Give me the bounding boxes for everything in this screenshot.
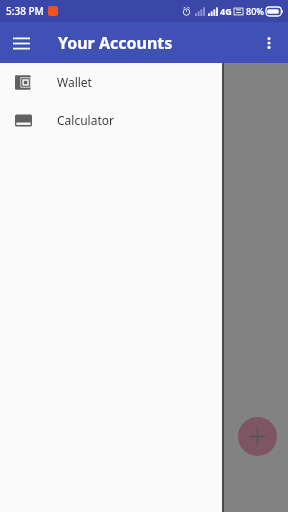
staticText: 5:38 PM bbox=[6, 4, 44, 18]
button[interactable]: Calculator bbox=[0, 101, 222, 139]
staticText: Calculator bbox=[57, 112, 114, 128]
button[interactable]: Add an account below bbox=[10, 68, 278, 128]
button[interactable]: Wallet bbox=[0, 63, 222, 101]
button[interactable]: More options bbox=[254, 28, 284, 58]
staticText: 4G bbox=[220, 5, 232, 17]
staticText: Add an account below bbox=[24, 89, 159, 107]
button[interactable]: Open navigation menu bbox=[6, 28, 36, 58]
staticText: Wallet bbox=[57, 74, 92, 90]
staticText: 80% bbox=[246, 5, 264, 17]
button[interactable]: Add account bbox=[238, 417, 277, 456]
staticText: Your Accounts bbox=[58, 32, 173, 54]
button[interactable] bbox=[0, 0, 288, 512]
